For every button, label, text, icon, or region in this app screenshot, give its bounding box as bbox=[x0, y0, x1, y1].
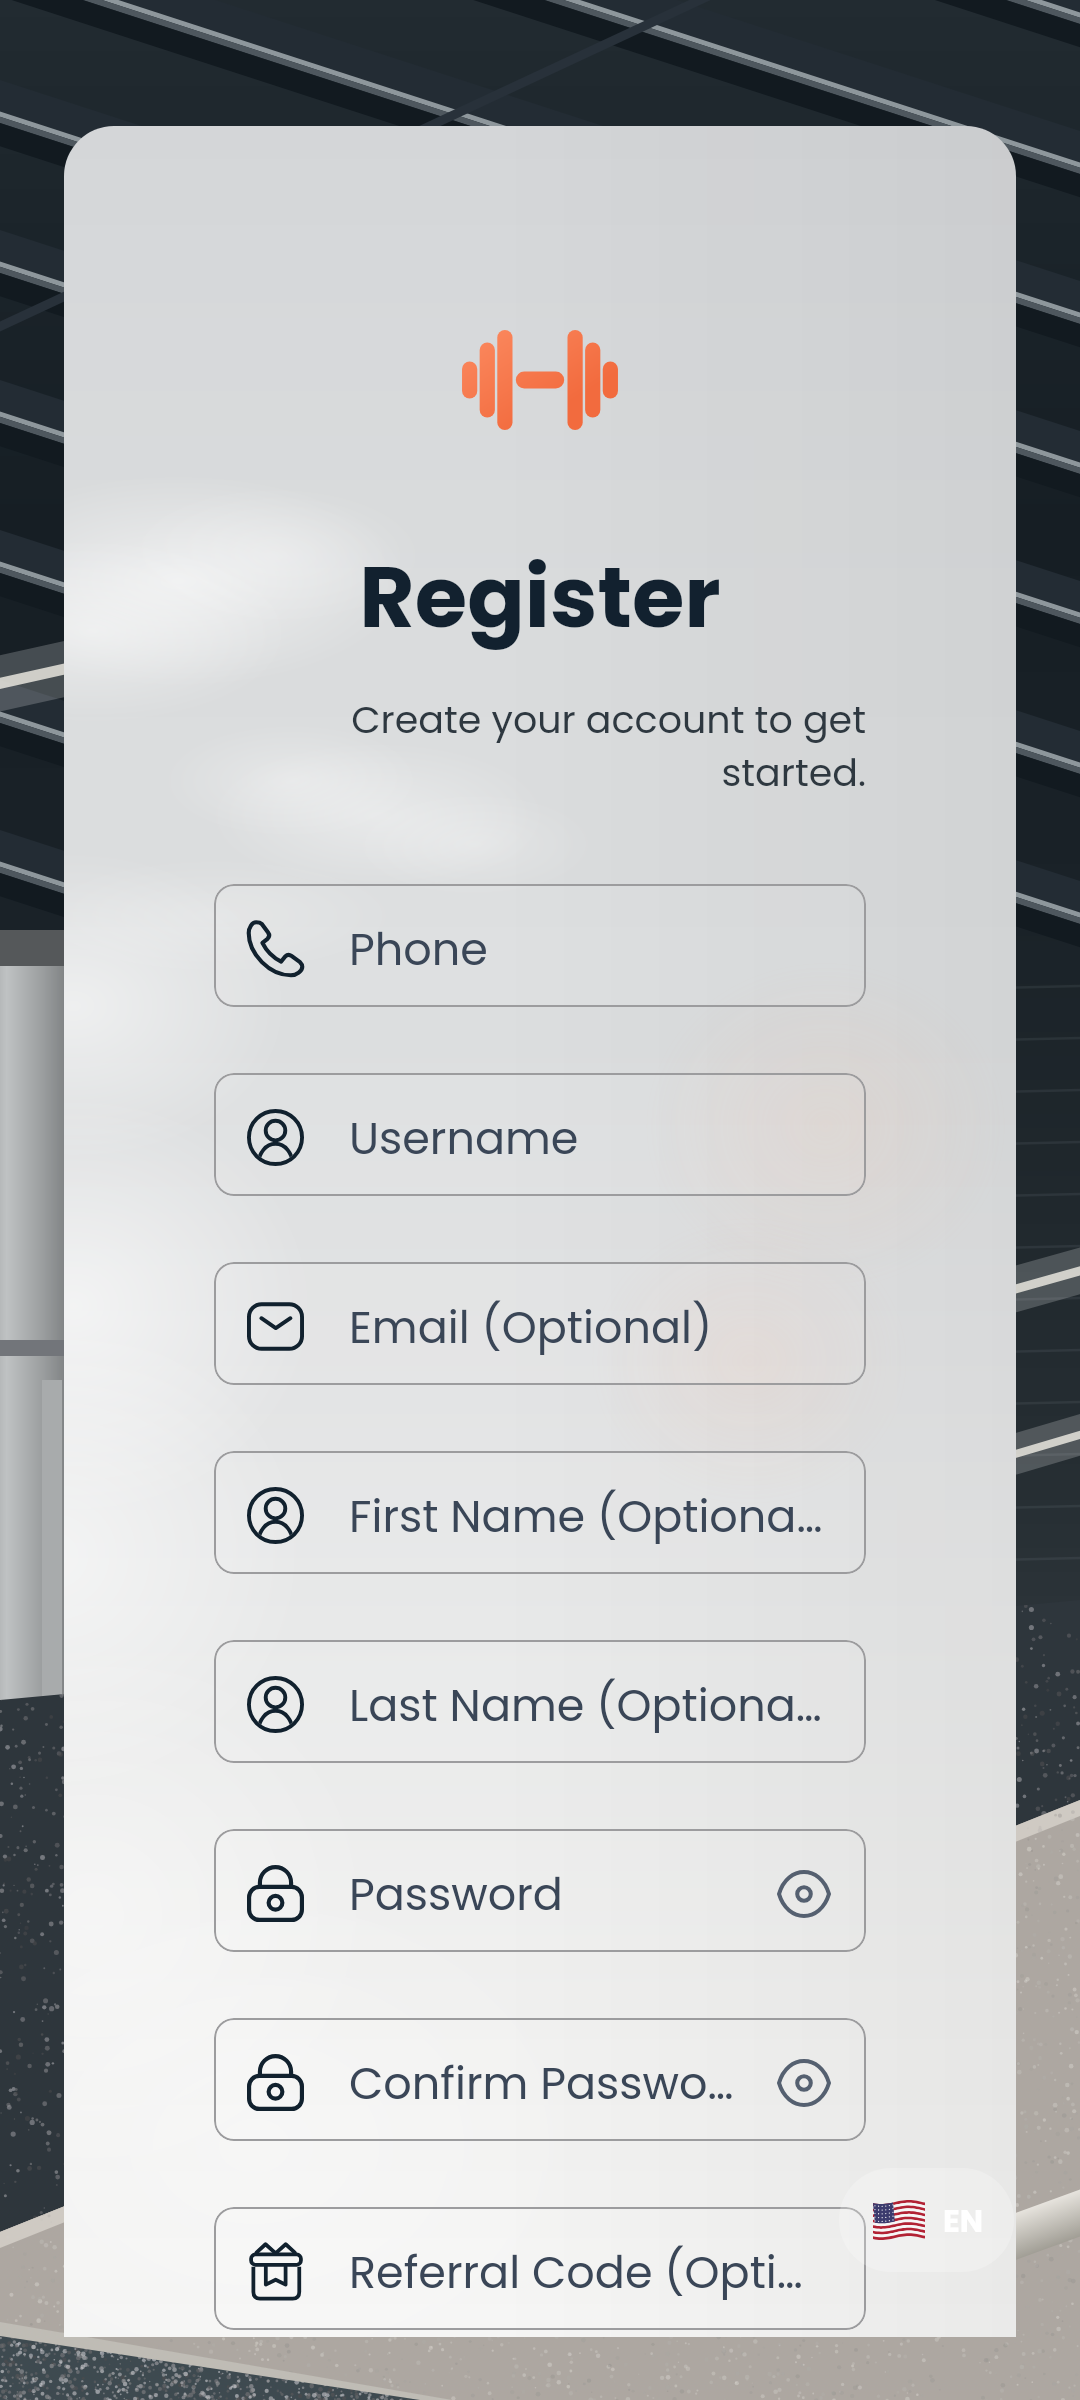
staticText: EN bbox=[943, 2199, 982, 2242]
staticText: Email (Optional) bbox=[349, 1296, 825, 1358]
button[interactable]: Show password bbox=[777, 2056, 831, 2110]
staticText: Username bbox=[349, 1107, 825, 1169]
staticText: Referral Code (Optional) bbox=[349, 2241, 825, 2303]
button[interactable]: Show password bbox=[777, 1867, 831, 1921]
staticText: Register bbox=[64, 538, 1016, 657]
button[interactable]: Referral Code (Optional) bbox=[214, 2207, 866, 2330]
button[interactable]: Email (Optional) bbox=[214, 1262, 866, 1385]
staticText: Create your account to get started. bbox=[214, 693, 866, 799]
staticText: Phone bbox=[349, 918, 825, 980]
button[interactable]: First Name (Optional) bbox=[214, 1451, 866, 1574]
staticText: Confirm Password bbox=[349, 2052, 741, 2114]
button[interactable]: Username bbox=[214, 1073, 866, 1196]
staticText: Password bbox=[349, 1863, 741, 1925]
button[interactable]: EN bbox=[839, 2168, 1014, 2272]
button[interactable]: Last Name (Optional) bbox=[214, 1640, 866, 1763]
button[interactable]: Phone bbox=[214, 884, 866, 1007]
button[interactable]: Password bbox=[214, 1829, 866, 1952]
staticText: First Name (Optional) bbox=[349, 1485, 825, 1547]
button[interactable]: Confirm Password bbox=[214, 2018, 866, 2141]
staticText: Last Name (Optional) bbox=[349, 1674, 825, 1736]
